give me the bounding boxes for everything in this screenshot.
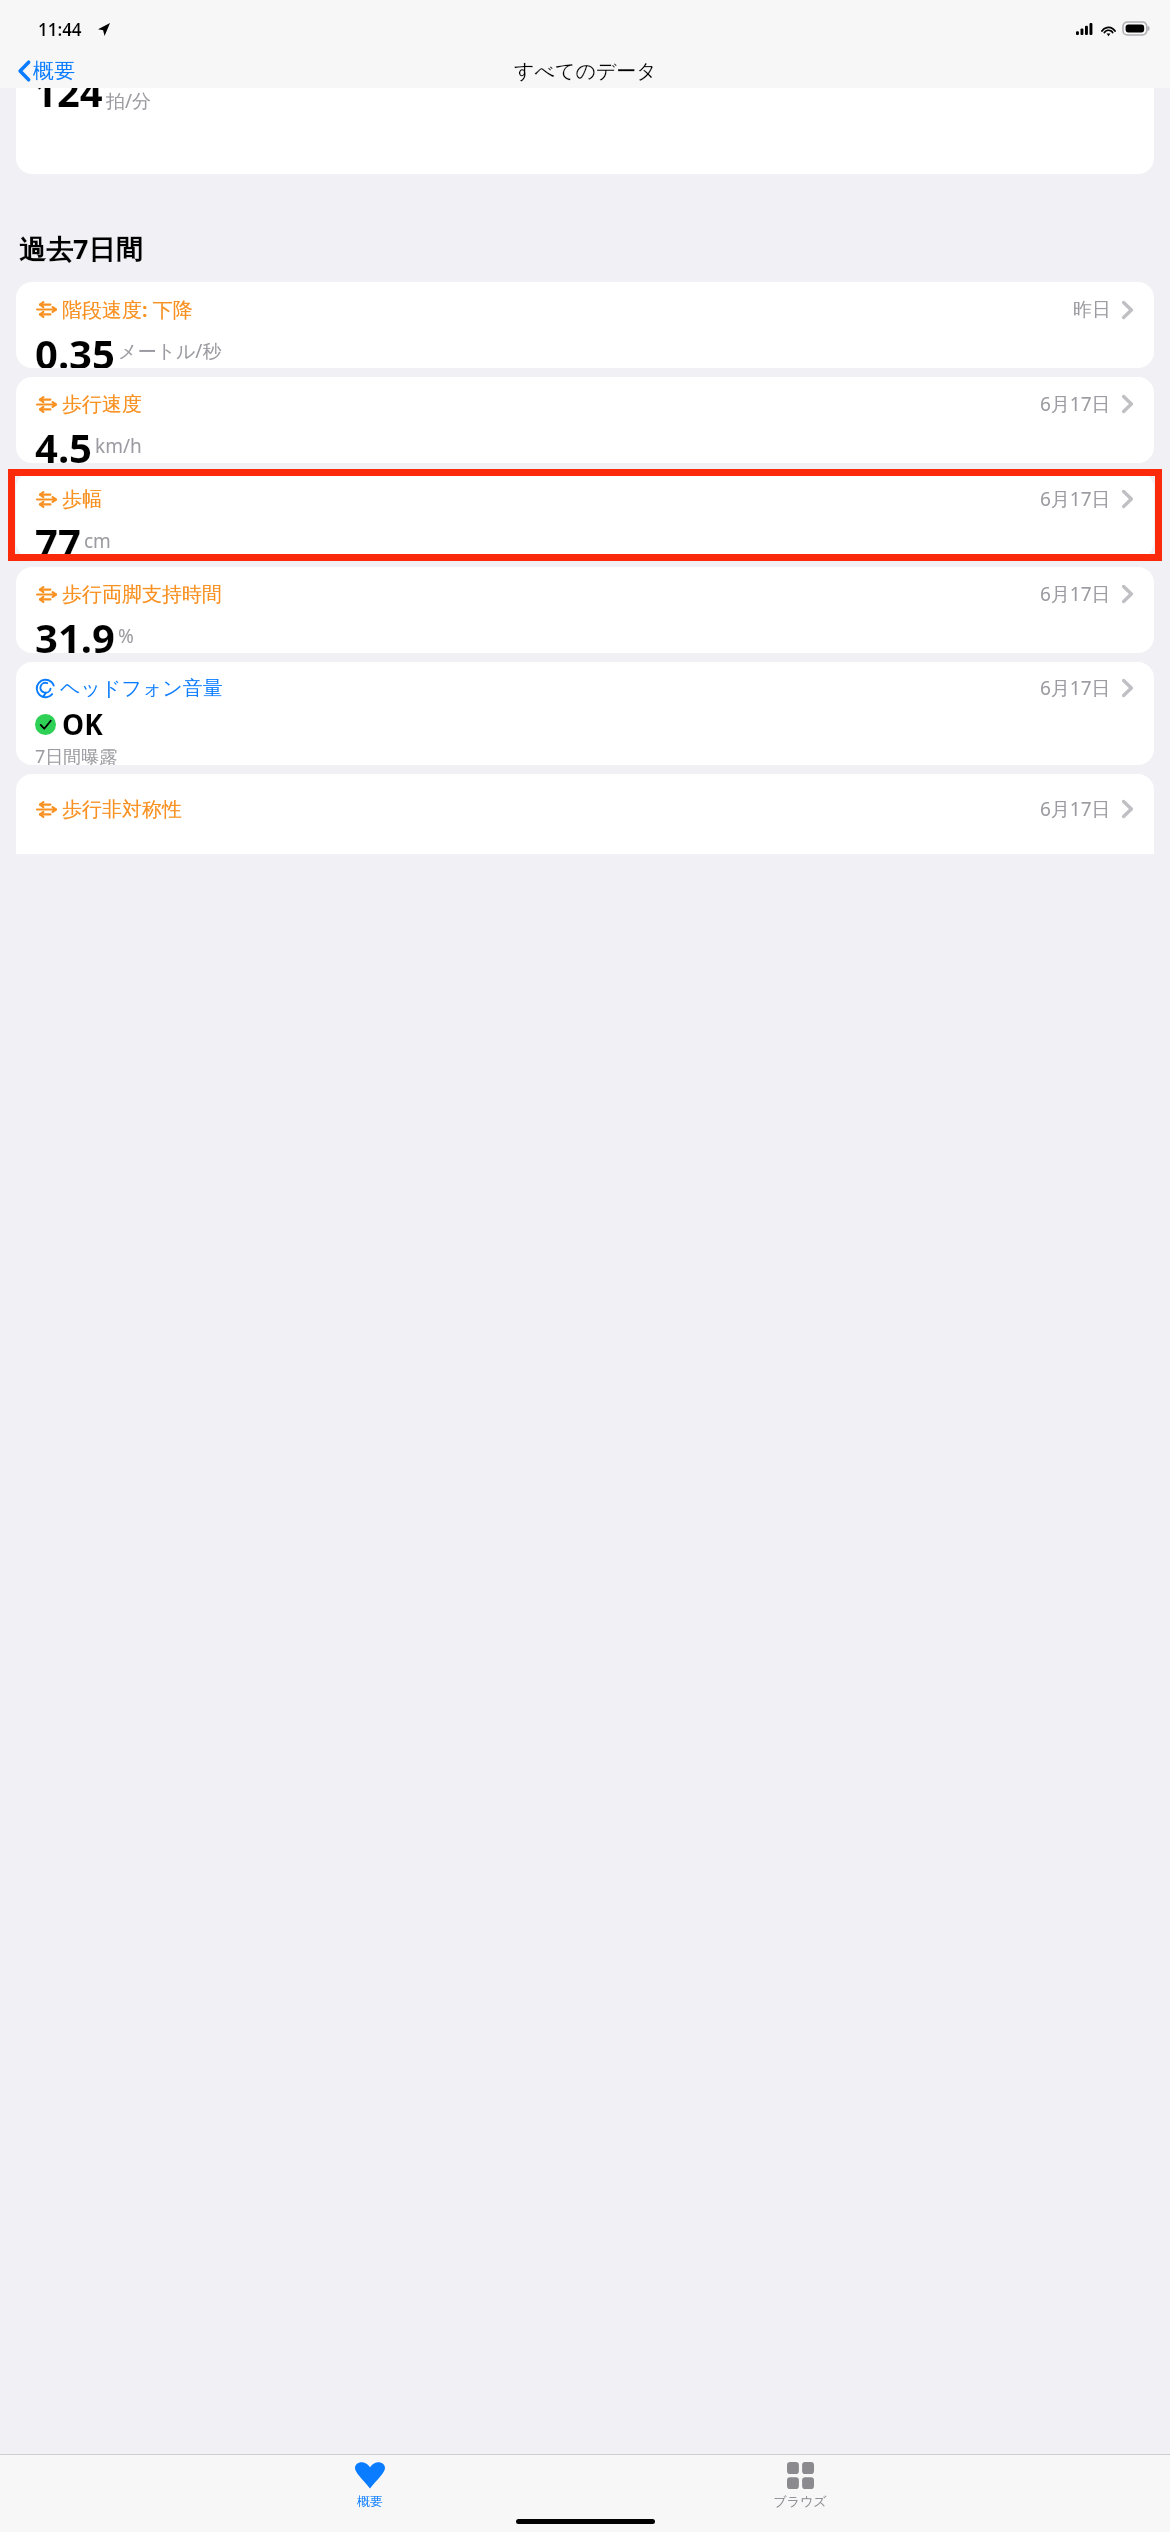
staticText: すべてのデータ: [514, 59, 657, 84]
staticText: ブラウズ: [773, 2493, 827, 2509]
staticText: 歩行速度: [62, 392, 142, 417]
staticText: 6月17日: [1040, 486, 1111, 512]
staticText: 6月17日: [1040, 581, 1111, 607]
staticText: 6月17日: [1040, 796, 1111, 822]
button[interactable]: ヘッドフォン音量: [16, 662, 1154, 765]
staticText: 7日間曝露: [35, 744, 118, 765]
staticText: 6月17日: [1040, 675, 1111, 701]
staticText: 4.5: [35, 420, 92, 463]
button[interactable]: 歩幅: [16, 472, 1154, 558]
staticText: 昨日: [1073, 298, 1111, 322]
staticText: 77: [35, 515, 81, 558]
staticText: %: [118, 623, 134, 649]
staticText: 歩幅: [62, 487, 102, 512]
staticText: km/h: [95, 433, 142, 459]
staticText: 概要: [357, 2493, 383, 2509]
staticText: cm: [84, 528, 111, 554]
button[interactable]: 概要: [12, 58, 75, 84]
button[interactable]: 歩行両脚支持時間: [16, 567, 1154, 653]
staticText: 31.9: [35, 610, 115, 653]
button[interactable]: 歩行非対称性: [16, 774, 1154, 854]
staticText: 概要: [33, 58, 75, 84]
button[interactable]: 124: [16, 58, 1154, 174]
button[interactable]: 階段速度: 下降: [16, 282, 1154, 368]
staticText: 階段速度: 下降: [62, 296, 193, 323]
staticText: OK: [62, 705, 103, 743]
staticText: メートル/秒: [118, 338, 222, 364]
staticText: 11:44: [38, 18, 82, 41]
staticText: 124: [34, 64, 103, 118]
staticText: 6月17日: [1040, 391, 1111, 417]
staticText: 拍/分: [106, 88, 152, 114]
staticText: 歩行非対称性: [62, 797, 182, 822]
staticText: 歩行両脚支持時間: [62, 582, 222, 607]
staticText: ヘッドフォン音量: [60, 676, 223, 701]
button[interactable]: ブラウズ: [740, 2455, 860, 2509]
staticText: 0.35: [35, 326, 115, 368]
button[interactable]: 概要: [310, 2455, 430, 2509]
button[interactable]: 歩行速度: [16, 377, 1154, 463]
staticText: 過去7日間: [19, 230, 143, 267]
